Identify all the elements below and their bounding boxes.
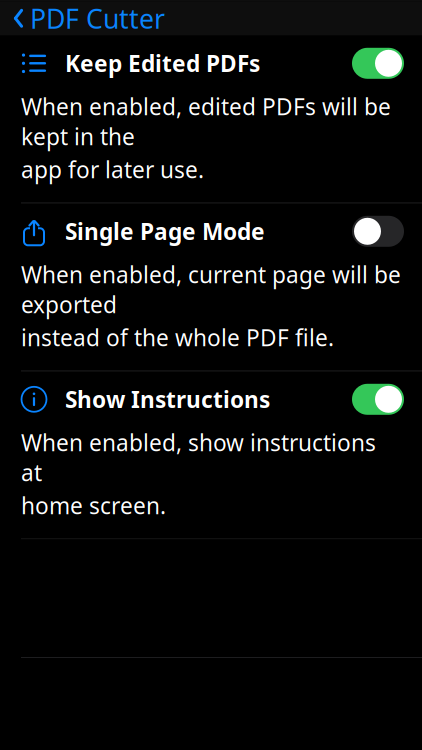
staticText: When enabled, show instructions at [21, 427, 376, 487]
staticText: Single Page Mode [65, 216, 265, 246]
staticText: app for later use. [21, 154, 204, 185]
button[interactable]: Show Instructions [0, 371, 422, 427]
staticText: Keep Edited PDFs [65, 48, 260, 78]
staticText: PDF Cutter [30, 1, 165, 36]
staticText: When enabled, current page will be expor… [21, 259, 401, 319]
button[interactable]: PDF Cutter [0, 0, 165, 40]
staticText: home screen. [21, 490, 166, 521]
button[interactable]: Single Page Mode [0, 203, 422, 259]
staticText: instead of the whole PDF file. [21, 322, 334, 353]
button[interactable]: Keep Edited PDFs [0, 35, 422, 91]
staticText: When enabled, edited PDFs will be kept i… [21, 91, 391, 151]
staticText: Show Instructions [65, 384, 270, 414]
